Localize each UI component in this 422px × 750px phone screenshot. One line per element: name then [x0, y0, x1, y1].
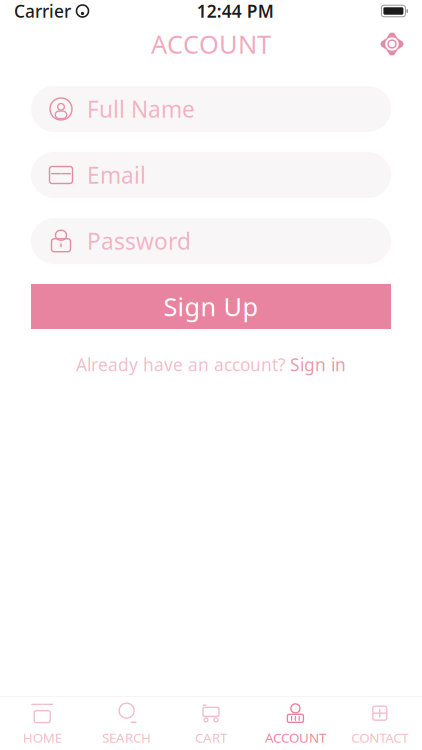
staticText: Already have an account? [76, 353, 286, 376]
button[interactable]: Settings [372, 24, 412, 64]
button[interactable]: CART [169, 694, 253, 750]
button[interactable]: SEARCH [84, 694, 169, 750]
staticText: HOME [23, 729, 62, 746]
button[interactable]: Email [31, 152, 391, 198]
button[interactable]: Sign Up [31, 284, 391, 329]
staticText: 12:44 PM [197, 0, 274, 22]
staticText: Sign Up [163, 290, 258, 323]
staticText: Carrier [14, 0, 71, 22]
staticText: CONTACT [351, 729, 408, 746]
button[interactable]: Full Name [31, 86, 391, 132]
staticText: ACCOUNT [265, 729, 326, 746]
button[interactable]: CONTACT [338, 694, 422, 750]
button[interactable]: Password [31, 218, 391, 264]
staticText: ACCOUNT [151, 27, 271, 61]
staticText: Email [87, 160, 146, 190]
button[interactable]: Already have an account? [76, 349, 346, 380]
button[interactable]: HOME [0, 694, 84, 750]
staticText: SEARCH [102, 729, 151, 746]
staticText: Full Name [87, 94, 195, 124]
staticText: Sign in [290, 353, 346, 376]
staticText: CART [195, 729, 227, 746]
button[interactable]: ACCOUNT [253, 694, 338, 750]
staticText: Password [87, 226, 191, 256]
